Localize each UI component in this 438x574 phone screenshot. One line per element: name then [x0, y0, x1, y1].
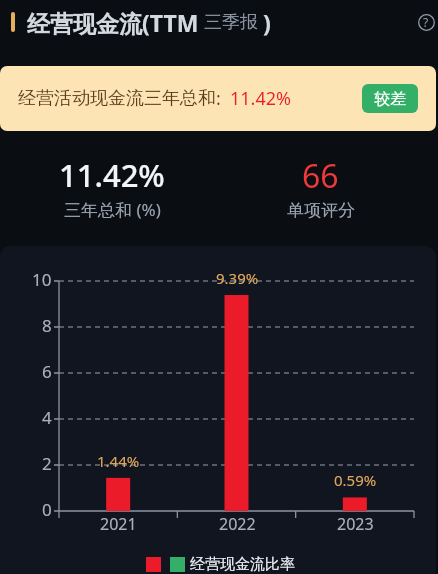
staticText: 三年总和 (%) — [64, 198, 161, 221]
button[interactable]: Help — [412, 8, 438, 36]
button[interactable]: 经营活动现金流三年总和 — [0, 66, 436, 131]
staticText: 2021 — [100, 513, 137, 535]
staticText: 2 — [42, 452, 52, 472]
staticText: 0.59% — [334, 470, 377, 490]
staticText: 单项评分 — [287, 200, 355, 221]
staticText: 8 — [42, 314, 52, 334]
staticText: 经营现金流(TTM — [27, 7, 199, 38]
staticText: 0 — [42, 498, 52, 518]
staticText: 经营现金流比率 — [190, 555, 295, 574]
staticText: ) — [263, 7, 271, 38]
staticText: 9.39% — [216, 268, 259, 288]
staticText: 4 — [42, 406, 52, 426]
staticText: 11.42% — [59, 154, 165, 196]
staticText: ? — [423, 14, 429, 30]
staticText: 较差 — [374, 89, 406, 109]
staticText: 10 — [32, 268, 52, 288]
staticText: 66 — [302, 154, 339, 198]
staticText: : — [216, 86, 221, 111]
staticText: 三季报 — [204, 11, 258, 34]
staticText: 11.42% — [230, 86, 291, 111]
button[interactable]: 较差 — [362, 84, 418, 113]
staticText: 2022 — [219, 513, 256, 535]
staticText: 经营活动现金流三年总和 — [18, 87, 216, 110]
staticText: 1.44% — [97, 451, 140, 471]
staticText: 2023 — [337, 513, 374, 535]
staticText: 6 — [42, 360, 52, 380]
